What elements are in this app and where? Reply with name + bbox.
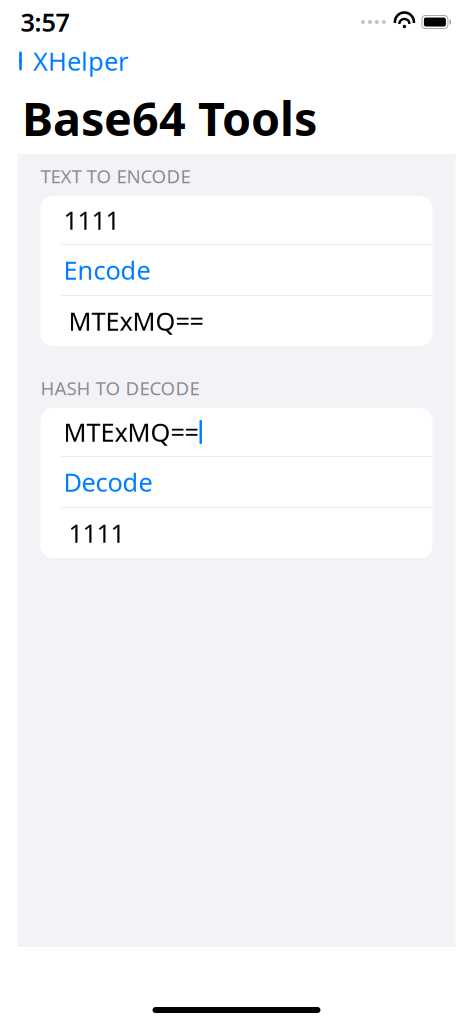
button[interactable]: Encode xyxy=(40,245,432,295)
staticText: Encode xyxy=(63,253,150,287)
staticText: 3:57 xyxy=(20,5,69,39)
staticText: 1111 xyxy=(63,203,119,237)
staticText: Base64 Tools xyxy=(22,87,317,149)
staticText: TEXT TO ENCODE xyxy=(40,164,190,188)
button[interactable]: Decode xyxy=(40,457,432,507)
staticText: 1111 xyxy=(68,516,124,550)
staticText: MTExMQ== xyxy=(68,304,203,338)
staticText: Decode xyxy=(63,465,152,499)
staticText: HASH TO DECODE xyxy=(40,376,199,400)
button[interactable]: XHelper xyxy=(0,38,128,84)
staticText: MTExMQ== xyxy=(63,415,198,449)
staticText: XHelper xyxy=(33,44,128,78)
